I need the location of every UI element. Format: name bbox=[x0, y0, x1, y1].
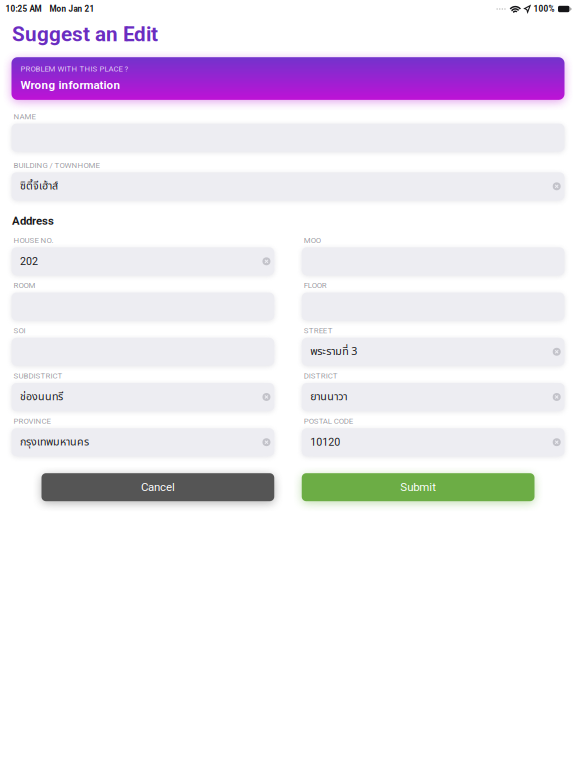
staticText: ROOM bbox=[13, 281, 35, 290]
staticText: PROBLEM WITH THIS PLACE ? bbox=[20, 64, 128, 73]
staticText: 202 bbox=[20, 255, 38, 268]
staticText: FLOOR bbox=[304, 281, 327, 290]
button[interactable]: ยานนาวา bbox=[302, 383, 565, 411]
staticText: Submit bbox=[400, 480, 436, 494]
button[interactable]: ช่องนนทรี bbox=[11, 383, 274, 411]
button[interactable]: กรุงเทพมหานคร bbox=[11, 428, 274, 456]
staticText: MOO bbox=[304, 236, 321, 245]
staticText: กรุงเทพมหานคร bbox=[20, 434, 89, 450]
staticText: ซิตี้จีเฮ้าส์ bbox=[20, 178, 58, 194]
staticText: BUILDING / TOWNHOME bbox=[13, 161, 99, 170]
staticText: ยานนาวา bbox=[310, 389, 347, 405]
staticText: 10:25 AM bbox=[5, 4, 41, 14]
staticText: Cancel bbox=[141, 480, 175, 494]
staticText: Mon Jan 21 bbox=[49, 4, 94, 14]
staticText: Wrong information bbox=[20, 78, 120, 92]
staticText: PROVINCE bbox=[13, 416, 50, 426]
staticText: Suggest an Edit bbox=[12, 22, 158, 46]
staticText: SOI bbox=[13, 326, 25, 335]
button[interactable]: ซิตี้จีเฮ้าส์ bbox=[11, 172, 564, 200]
staticText: NAME bbox=[13, 112, 35, 121]
staticText: SUBDISTRICT bbox=[13, 371, 62, 380]
staticText: DISTRICT bbox=[304, 371, 338, 380]
staticText: Address bbox=[12, 214, 54, 228]
staticText: HOUSE NO. bbox=[13, 236, 53, 245]
button[interactable]: Submit bbox=[302, 473, 535, 501]
staticText: 100% bbox=[534, 4, 555, 14]
staticText: STREET bbox=[304, 326, 333, 335]
button[interactable]: พระรามที่ 3 bbox=[302, 338, 565, 366]
staticText: 10120 bbox=[310, 436, 340, 448]
staticText: พระรามที่ 3 bbox=[310, 344, 357, 360]
staticText: POSTAL CODE bbox=[304, 416, 353, 426]
button[interactable]: 10120 bbox=[302, 428, 565, 456]
button[interactable]: Cancel bbox=[41, 473, 274, 501]
staticText: ช่องนนทรี bbox=[20, 389, 63, 405]
button[interactable]: 202 bbox=[11, 247, 274, 275]
